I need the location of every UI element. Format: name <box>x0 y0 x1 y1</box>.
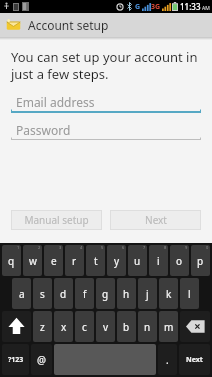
button[interactable]: z <box>33 311 52 342</box>
staticText: Email address <box>16 94 95 110</box>
staticText: h <box>123 287 130 301</box>
button[interactable]: g <box>96 278 115 309</box>
staticText: 4 <box>80 245 83 250</box>
staticText: Password <box>16 122 71 138</box>
staticText: 0 <box>206 245 209 250</box>
staticText: 9 <box>185 245 188 250</box>
button[interactable]: 3 <box>44 245 63 276</box>
staticText: e <box>51 254 57 268</box>
button[interactable]: a <box>12 278 31 309</box>
staticText: @ <box>37 353 46 367</box>
button[interactable]: 1 <box>2 245 21 276</box>
button[interactable]: @ <box>31 344 52 375</box>
button[interactable]: 5 <box>86 245 105 276</box>
staticText: 1 <box>17 245 20 250</box>
staticText: 2 <box>38 245 41 250</box>
staticText: t <box>94 254 98 268</box>
button[interactable]: n <box>138 311 157 342</box>
staticText: 3G <box>151 2 161 12</box>
staticText: f <box>83 287 87 301</box>
staticText: Next <box>145 213 167 227</box>
staticText: j <box>146 287 149 301</box>
staticText: Manual setup <box>24 213 89 227</box>
button[interactable]: 7 <box>128 245 147 276</box>
staticText: b <box>123 320 130 334</box>
button[interactable]: v <box>96 311 115 342</box>
staticText: . <box>166 353 169 367</box>
button[interactable]: b <box>117 311 136 342</box>
button[interactable]: Shift <box>2 311 31 342</box>
staticText: m <box>164 320 174 334</box>
staticText: d <box>60 287 67 301</box>
staticText: You can set up your account in just a fe… <box>11 48 201 83</box>
staticText: r <box>72 254 77 268</box>
button[interactable]: x <box>54 311 73 342</box>
staticText: q <box>8 254 15 268</box>
staticText: l <box>188 287 191 301</box>
staticText: a <box>19 287 25 301</box>
button[interactable]: c <box>75 311 94 342</box>
staticText: w <box>29 254 37 268</box>
staticText: y <box>114 254 120 268</box>
button[interactable]: . <box>158 344 177 375</box>
button[interactable]: 2 <box>23 245 42 276</box>
button[interactable]: l <box>180 278 199 309</box>
staticText: v <box>103 320 109 334</box>
button[interactable]: m <box>159 311 178 342</box>
button[interactable]: Delete <box>180 311 210 342</box>
staticText: ?123 <box>8 355 24 365</box>
staticText: c <box>82 320 87 334</box>
button[interactable]: Password <box>11 121 201 140</box>
button[interactable]: d <box>54 278 73 309</box>
button[interactable]: s <box>33 278 52 309</box>
button[interactable]: 4 <box>65 245 84 276</box>
staticText: p <box>197 254 204 268</box>
staticText: 5 <box>101 245 104 250</box>
staticText: Account setup <box>28 17 109 33</box>
staticText: Next <box>186 355 203 365</box>
staticText: AM <box>202 5 210 12</box>
button[interactable]: h <box>117 278 136 309</box>
staticText: 8 <box>164 245 167 250</box>
staticText: k <box>166 287 172 301</box>
button[interactable]: ?123 <box>2 344 29 375</box>
staticText: s <box>40 287 45 301</box>
staticText: n <box>144 320 151 334</box>
staticText: o <box>176 254 183 268</box>
button[interactable]: Manual setup <box>11 210 102 230</box>
button[interactable]: k <box>159 278 178 309</box>
button[interactable]: 9 <box>170 245 189 276</box>
staticText: 3 <box>59 245 62 250</box>
button[interactable]: f <box>75 278 94 309</box>
button[interactable]: 6 <box>107 245 126 276</box>
button[interactable]: Next <box>110 210 201 230</box>
staticText: 7 <box>143 245 146 250</box>
button[interactable]: 0 <box>191 245 210 276</box>
staticText: 6 <box>122 245 125 250</box>
staticText: i <box>157 254 160 268</box>
button[interactable]: j <box>138 278 157 309</box>
button[interactable]: Email address <box>11 93 201 113</box>
staticText: G <box>135 2 141 12</box>
staticText: g <box>102 287 109 301</box>
staticText: z <box>40 320 45 334</box>
staticText: 11:33 <box>180 1 201 12</box>
staticText: x <box>61 320 67 334</box>
button[interactable]: Next <box>179 344 210 375</box>
button[interactable]: 8 <box>149 245 168 276</box>
button[interactable]: Account setup <box>0 13 212 37</box>
staticText: u <box>134 254 141 268</box>
